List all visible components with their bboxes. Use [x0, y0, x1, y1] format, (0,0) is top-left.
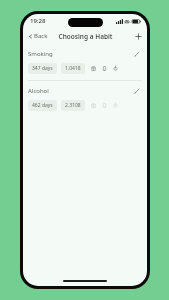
staticText: 2.3108 [65, 102, 81, 109]
staticText: 1.0418 [65, 65, 81, 72]
staticText: Back [34, 32, 48, 40]
button[interactable]: Edit Alcohol [132, 86, 142, 96]
staticText: 19:28 [30, 17, 46, 25]
button[interactable]: Add habit [130, 30, 147, 43]
staticText: 347 days [32, 65, 53, 72]
button[interactable]: 1.0418 [61, 63, 85, 74]
button[interactable]: Reset [112, 65, 119, 72]
button[interactable]: Back [23, 30, 52, 42]
button[interactable]: Edit Smoking [132, 49, 142, 59]
staticText: Choosing a Habit [58, 32, 113, 41]
button[interactable]: 347 days [28, 63, 57, 74]
button[interactable]: Smoking [23, 44, 147, 80]
button[interactable]: Alcohol [23, 81, 147, 117]
staticText: Alcohol [28, 87, 49, 95]
staticText: 462 days [32, 102, 53, 109]
button[interactable]: 462 days [28, 100, 57, 111]
button[interactable]: Calendar [90, 102, 97, 109]
staticText: Smoking [28, 50, 53, 58]
button[interactable]: Device [101, 65, 108, 72]
button[interactable]: Reset [112, 102, 119, 109]
button[interactable]: Device [101, 102, 108, 109]
button[interactable]: Calendar [90, 65, 97, 72]
button[interactable]: 2.3108 [61, 100, 85, 111]
